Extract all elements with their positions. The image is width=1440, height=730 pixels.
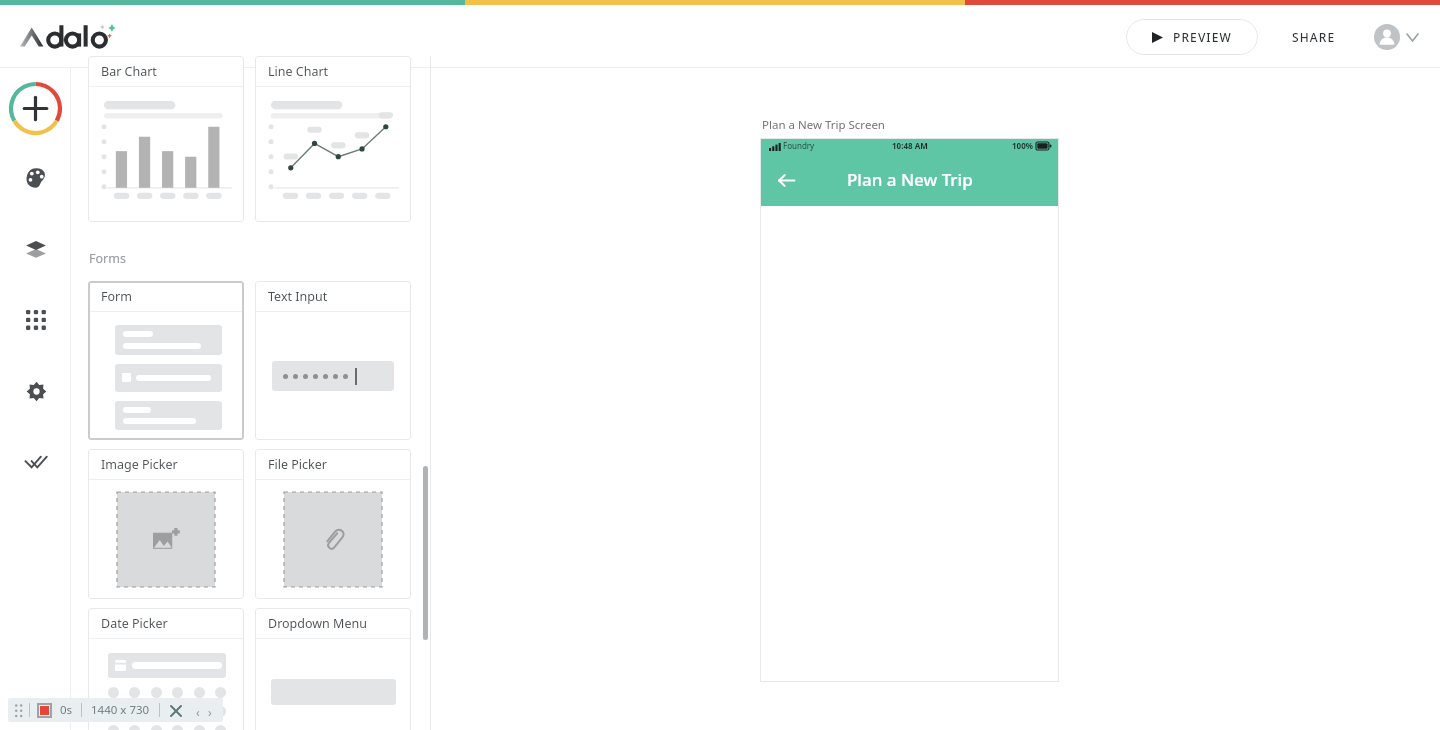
button[interactable]: Bar Chart [88, 56, 244, 222]
button[interactable]: Settings [17, 372, 55, 410]
button[interactable]: Date Picker [88, 608, 244, 730]
button[interactable]: Design [17, 159, 55, 197]
staticText: 1440 x 730 [91, 702, 150, 718]
button[interactable]: Publish [17, 443, 55, 481]
staticText: File Picker [268, 456, 327, 473]
button[interactable]: Dropdown Menu [255, 608, 411, 730]
button[interactable]: SHARE [1284, 23, 1344, 51]
button[interactable]: Next [204, 704, 216, 716]
staticText: Plan a New Trip Screen [762, 117, 885, 133]
button[interactable]: Stop recording [37, 703, 52, 718]
button[interactable]: Close [168, 703, 183, 718]
staticText: Plan a New Trip [847, 168, 973, 191]
button[interactable]: Previous [192, 704, 204, 716]
button[interactable]: Back [771, 165, 801, 195]
staticText: Bar Chart [101, 63, 157, 80]
button[interactable]: Image Picker [88, 449, 244, 599]
staticText: Image Picker [101, 456, 178, 473]
button[interactable]: Text Input [255, 281, 411, 440]
button[interactable]: Line Chart [255, 56, 411, 222]
button[interactable] [20, 22, 132, 52]
staticText: ‹ [196, 704, 200, 716]
staticText: › [208, 704, 212, 716]
staticText: Dropdown Menu [268, 615, 367, 632]
button[interactable]: Add component [9, 82, 62, 135]
staticText: Foundry [783, 140, 815, 151]
button[interactable]: Foundry [760, 138, 1059, 682]
staticText: Forms [89, 250, 126, 267]
staticText: Line Chart [268, 63, 329, 80]
staticText: Form [101, 288, 132, 305]
staticText: Date Picker [101, 615, 168, 632]
button[interactable]: Account menu [1370, 20, 1422, 54]
button[interactable]: Layers [17, 230, 55, 268]
other: Drag [15, 704, 23, 717]
staticText: PREVIEW [1173, 29, 1232, 45]
button[interactable]: PREVIEW [1126, 19, 1258, 55]
button[interactable]: Components [17, 301, 55, 339]
staticText: 100% [1012, 140, 1033, 151]
staticText: SHARE [1292, 29, 1336, 45]
button[interactable]: Form [88, 281, 244, 440]
staticText: Text Input [268, 288, 328, 305]
staticText: 0s [60, 702, 73, 718]
button[interactable]: File Picker [255, 449, 411, 599]
staticText: 10:48 AM [892, 140, 928, 151]
